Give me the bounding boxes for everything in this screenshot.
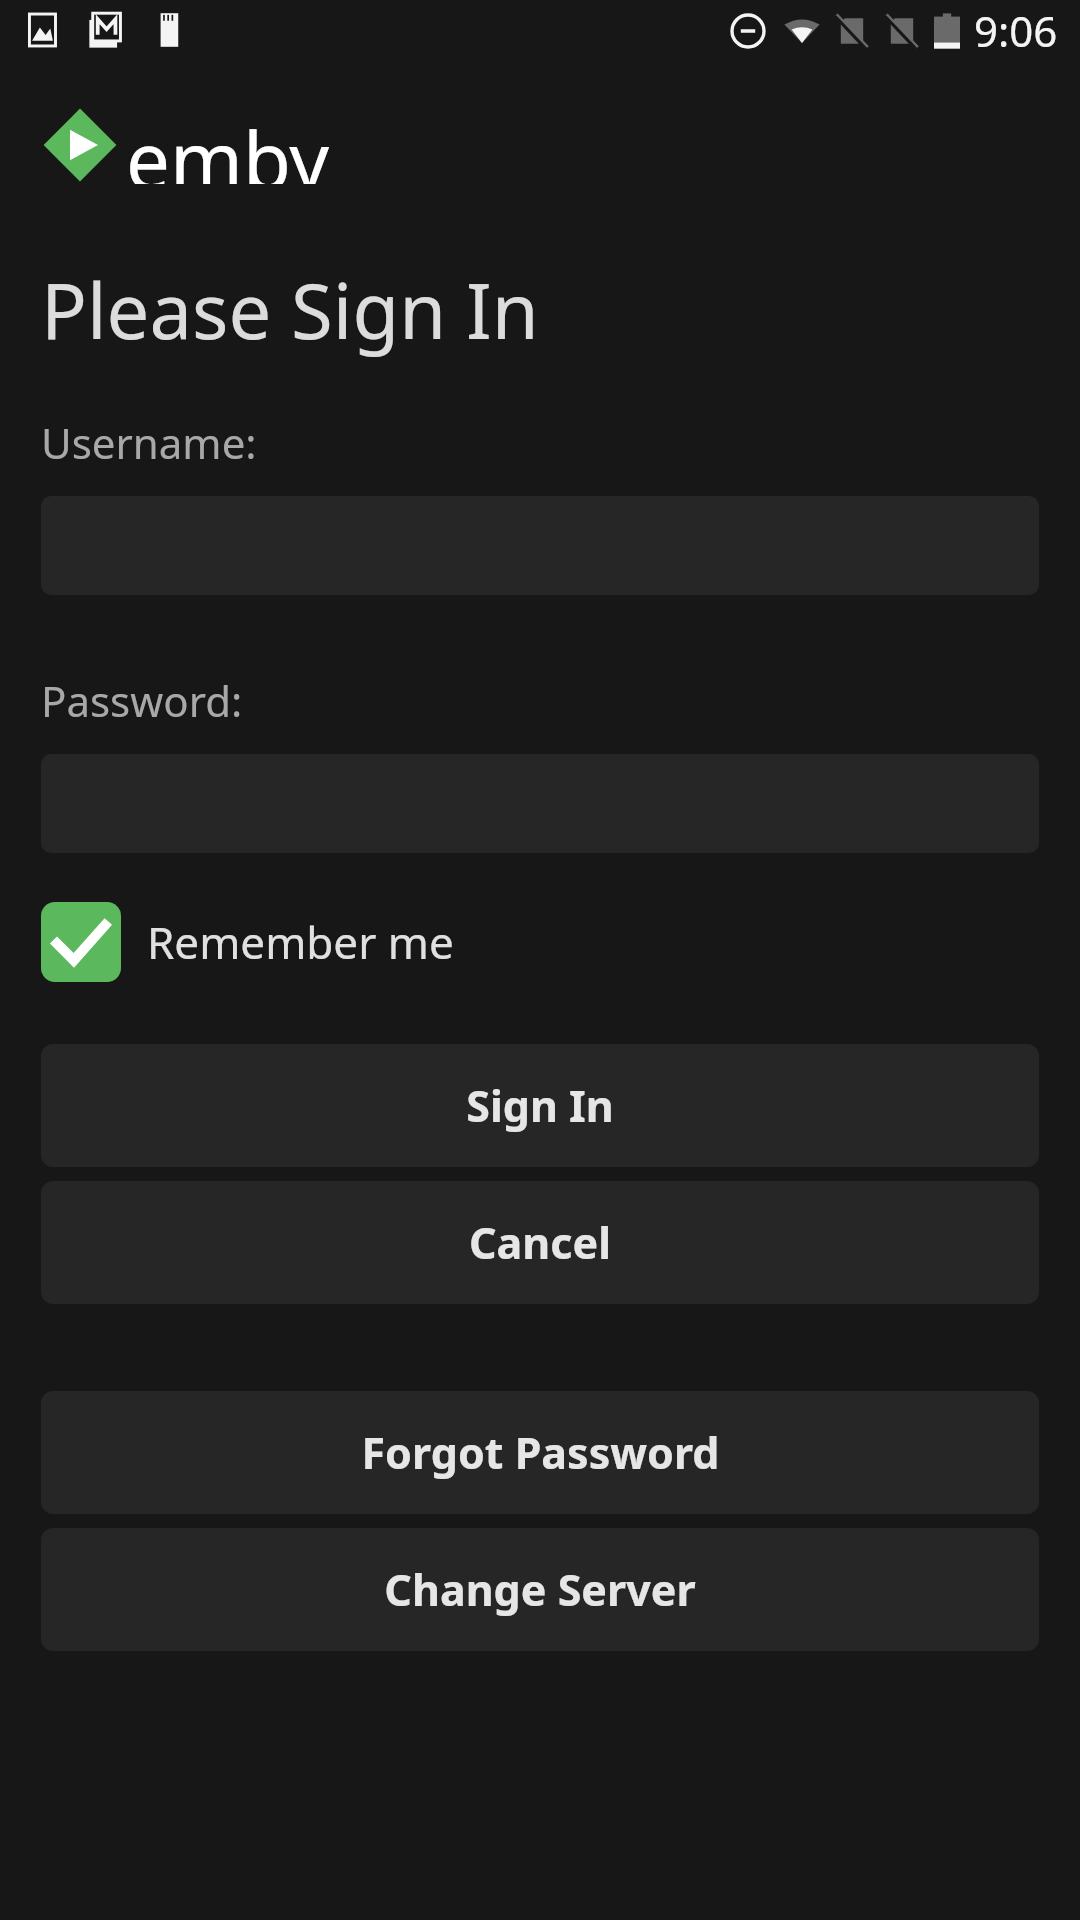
staticText: Forgot Password — [361, 1423, 720, 1482]
staticText: Username: — [41, 414, 257, 471]
button[interactable]: Change Server — [41, 1528, 1039, 1651]
button[interactable]: Forgot Password — [41, 1391, 1039, 1514]
button[interactable]: Sign In — [41, 1044, 1039, 1167]
staticText: 9:06 — [974, 2, 1058, 59]
staticText: Cancel — [469, 1213, 611, 1272]
button[interactable]: Remember me — [41, 902, 454, 982]
staticText: Remember me — [147, 912, 454, 972]
button[interactable]: Cancel — [41, 1181, 1039, 1304]
staticText: Password: — [41, 672, 243, 729]
staticText: Sign In — [466, 1076, 614, 1135]
staticText: Change Server — [384, 1560, 696, 1619]
staticText: Please Sign In — [41, 258, 539, 362]
staticText: emby — [126, 106, 330, 184]
